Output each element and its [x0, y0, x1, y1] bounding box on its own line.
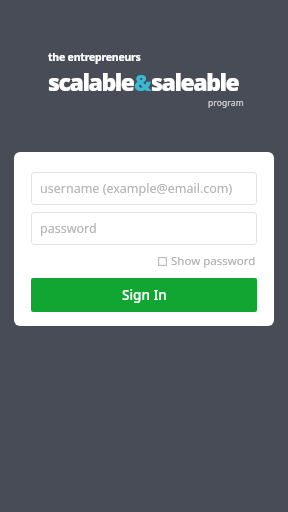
staticText: Sign In [122, 286, 167, 304]
staticText: password [40, 220, 97, 237]
button[interactable]: username (example@email.com) [31, 172, 257, 205]
button[interactable]: Show password [157, 251, 257, 271]
staticText: & [134, 67, 151, 97]
staticText: program [208, 97, 244, 109]
staticText: the entrepreneurs [48, 50, 141, 64]
button[interactable]: Sign In [31, 278, 257, 312]
button[interactable]: password [31, 212, 257, 245]
staticText: Show password [171, 253, 256, 269]
staticText: saleable [151, 66, 239, 97]
staticText: username (example@email.com) [40, 180, 233, 197]
staticText: scalable [48, 66, 134, 97]
